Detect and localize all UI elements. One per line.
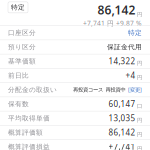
staticText: +7,741 円 +9.87 % (83, 19, 142, 28)
staticText: 再投資中 (105, 86, 125, 93)
staticText: 再投資コース (73, 86, 103, 93)
button[interactable]: 特定 (8, 2, 28, 13)
staticText: 特定 (128, 29, 142, 37)
staticText: 口 (137, 103, 142, 109)
staticText: 基準価額 (8, 57, 36, 65)
staticText: 円 (137, 145, 142, 150)
staticText: 平均取得単価 (8, 114, 50, 122)
staticText: 円 (137, 131, 142, 138)
staticText: [変更] (128, 86, 142, 93)
staticText: 保有数 (8, 100, 29, 108)
staticText: 60,147 (108, 99, 135, 109)
staticText: 円 (137, 117, 142, 124)
staticText: 86,142 (97, 2, 135, 18)
button[interactable]: [変更] (128, 86, 142, 93)
staticText: +4 (125, 70, 135, 81)
staticText: +7,741 (108, 141, 135, 150)
staticText: 預り区分 (8, 43, 36, 51)
staticText: 前日比 (8, 71, 29, 80)
staticText: 円 (137, 74, 142, 81)
staticText: 口座区分 (8, 29, 36, 37)
staticText: 円 (137, 11, 142, 18)
staticText: 保証金代用 (107, 43, 142, 51)
staticText: 13,035 (108, 113, 135, 123)
staticText: 14,322 (108, 56, 135, 66)
staticText: 特定 (11, 3, 25, 11)
staticText: 概算評価損益 (8, 143, 50, 150)
staticText: 概算評価額 (8, 128, 43, 137)
staticText: 円 (137, 60, 142, 67)
staticText: 分配金の取扱い (8, 86, 57, 94)
staticText: 86,142 (108, 127, 135, 138)
